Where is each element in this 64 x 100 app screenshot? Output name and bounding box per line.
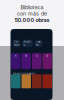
button[interactable]: Libro: [42, 76, 52, 94]
staticText: Texto: [36, 40, 41, 47]
button[interactable]: Texto: [34, 40, 42, 47]
button[interactable]: B: [21, 53, 31, 69]
button[interactable]: Todos: [12, 40, 20, 47]
staticText: D: [46, 54, 48, 57]
staticText: Seleccionados: [12, 72, 34, 75]
button[interactable]: Libro: [21, 76, 31, 94]
staticText: A: [15, 54, 17, 57]
button[interactable]: Libro: [11, 76, 20, 94]
staticText: 50.000 obras: [14, 17, 49, 23]
staticText: con más de: [17, 10, 47, 17]
button[interactable]: Audio: [22, 40, 33, 47]
staticText: B: [25, 54, 27, 57]
button[interactable]: Libro: [32, 76, 41, 94]
staticText: C: [36, 54, 38, 57]
staticText: Audio: [23, 40, 31, 47]
button[interactable]: D: [42, 53, 52, 69]
button[interactable]: A: [11, 53, 20, 69]
staticText: Todos: [14, 40, 19, 47]
button[interactable]: C: [32, 53, 41, 69]
staticText: Biblioteca: [20, 4, 43, 10]
